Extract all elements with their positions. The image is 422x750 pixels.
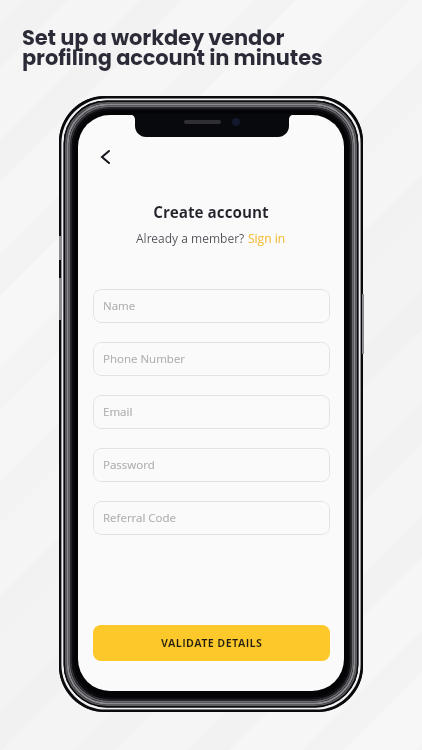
staticText: Set up a workdey vendor profiling accoun… (22, 23, 323, 72)
button[interactable]: Password (93, 448, 330, 482)
staticText: Phone Number (103, 351, 186, 367)
button[interactable]: Name (93, 289, 330, 323)
staticText: Already a member? (136, 230, 248, 246)
staticText: Name (103, 298, 136, 314)
staticText: VALIDATE DETAILS (161, 636, 263, 651)
button[interactable]: VALIDATE DETAILS (93, 625, 330, 661)
button[interactable]: Referral Code (93, 501, 330, 535)
staticText: Create account (153, 202, 269, 223)
button[interactable]: Phone Number (93, 342, 330, 376)
staticText: Password (103, 457, 155, 473)
staticText: Email (103, 404, 133, 420)
button[interactable]: Email (93, 395, 330, 429)
staticText: Referral Code (103, 510, 177, 526)
button[interactable]: Sign in (248, 230, 286, 246)
button[interactable]: Back (90, 142, 120, 172)
